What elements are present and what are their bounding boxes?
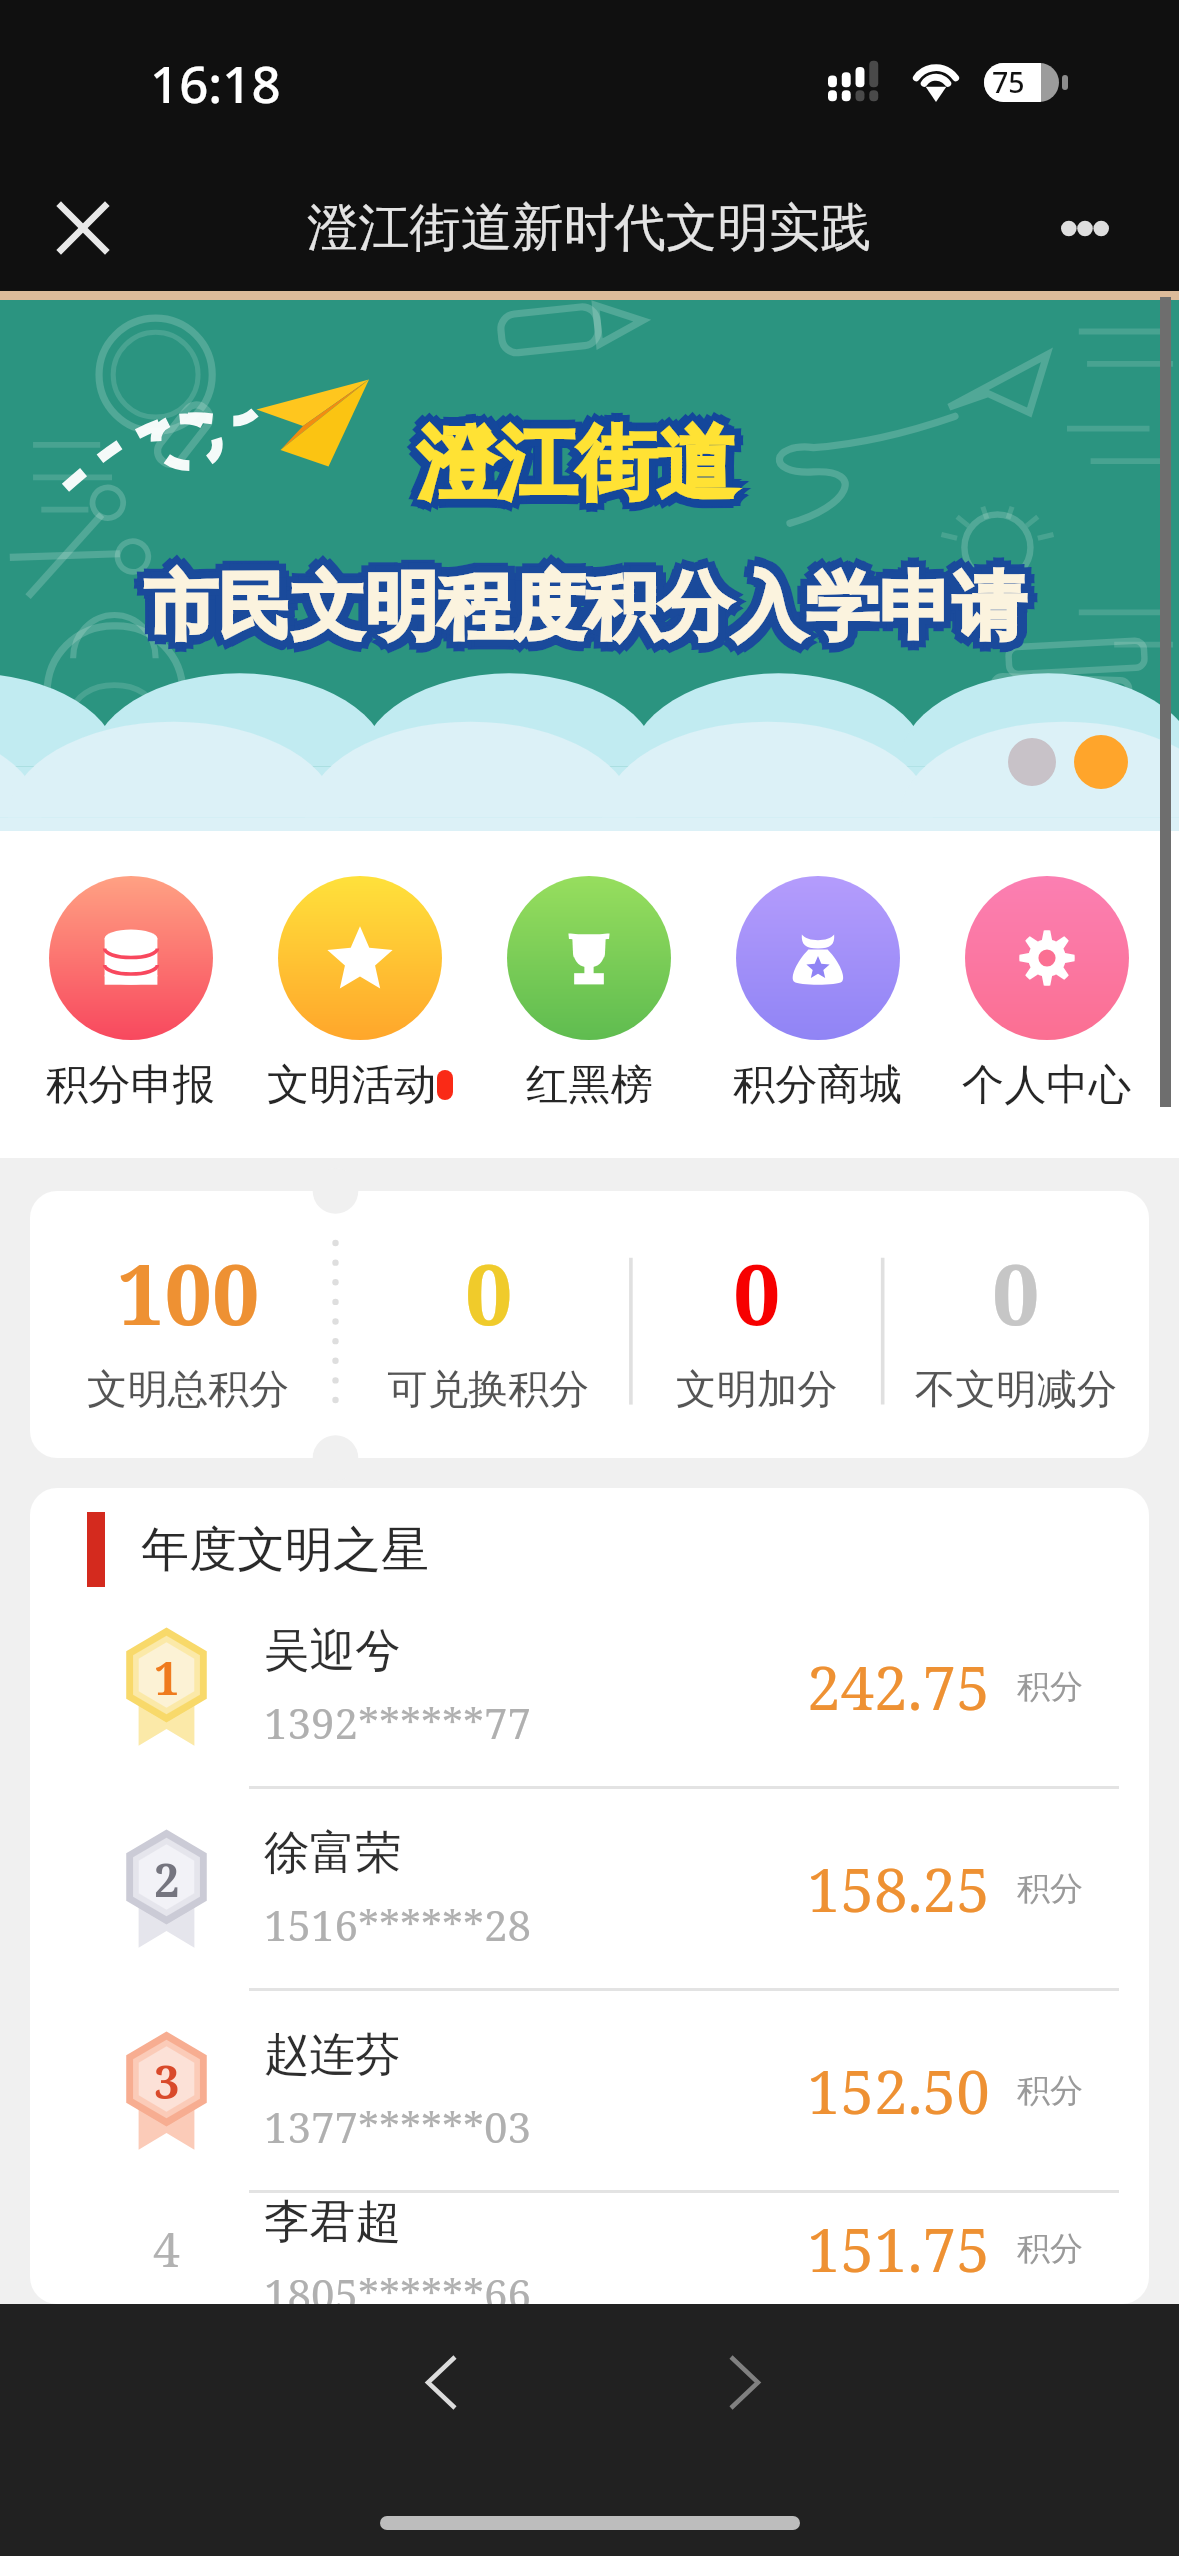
staticText: 澄江街道 xyxy=(417,423,737,524)
staticText: 3 xyxy=(154,2051,180,2112)
staticText: 市民文明程度积分入学申请 xyxy=(144,555,1026,648)
staticText: 年度文明之星 xyxy=(141,1520,429,1580)
staticText: 市民文明程度积分入学申请 xyxy=(137,568,1019,661)
button[interactable]: Forward xyxy=(684,2322,804,2442)
staticText: 吴迎兮 xyxy=(264,1622,401,1679)
staticText: 市民文明程度积分入学申请 xyxy=(150,561,1032,654)
staticText: 积分申报 xyxy=(46,1058,216,1111)
button[interactable]: 4 xyxy=(30,2193,1149,2304)
staticText: 不文明减分 xyxy=(915,1364,1118,1415)
staticText: 1516******28 xyxy=(264,1896,531,1953)
staticText: 积分 xyxy=(1017,2070,1083,2112)
staticText: 澄江街道 xyxy=(408,414,728,515)
button[interactable]: 2 xyxy=(30,1789,1149,1991)
staticText: 积分 xyxy=(1017,1666,1083,1708)
button[interactable]: 0 xyxy=(346,1191,631,1458)
staticText: 徐富荣 xyxy=(264,1824,401,1881)
staticText: 市民文明程度积分入学申请 xyxy=(134,561,1016,654)
staticText: 市民文明程度积分入学申请 xyxy=(144,551,1026,644)
staticText: 澄江街道 xyxy=(411,414,731,515)
button[interactable]: 1 xyxy=(30,1587,1149,1789)
button[interactable]: 0 xyxy=(883,1191,1149,1458)
staticText: 赵连芬 xyxy=(264,2026,401,2083)
staticText: 市民文明程度积分入学申请 xyxy=(138,567,1020,660)
staticText: 75 xyxy=(992,63,1025,102)
staticText: 市民文明程度积分入学申请 xyxy=(150,555,1032,648)
staticText: 个人中心 xyxy=(962,1058,1132,1111)
staticText: 澄江街道 xyxy=(410,407,730,508)
staticText: 澄江街道 xyxy=(417,408,737,509)
button[interactable]: 积分商城 xyxy=(725,876,911,1111)
staticText: 澄江街道 xyxy=(423,414,743,515)
staticText: 0 xyxy=(992,1235,1040,1349)
staticText: 市民文明程度积分入学申请 xyxy=(151,568,1033,661)
staticText: 0 xyxy=(733,1235,781,1349)
staticText: 文明加分 xyxy=(676,1364,838,1415)
staticText: 市民文明程度积分入学申请 xyxy=(144,567,1026,660)
staticText: 澄江街道 xyxy=(423,408,743,509)
staticText: 澄江街道 xyxy=(426,414,746,515)
staticText: 市民文明程度积分入学申请 xyxy=(144,571,1026,664)
staticText: 1 xyxy=(154,1647,180,1708)
staticText: 澄江街道 xyxy=(423,420,743,521)
staticText: 红黑榜 xyxy=(526,1058,653,1111)
staticText: 4 xyxy=(153,2216,180,2281)
staticText: 市民文明程度积分入学申请 xyxy=(138,555,1020,648)
button[interactable]: 澄江街道 xyxy=(0,291,1179,831)
staticText: 0 xyxy=(465,1235,513,1349)
staticText: 1377******03 xyxy=(264,2098,531,2155)
staticText: 152.50 xyxy=(807,2050,990,2132)
staticText: 澄江街道 xyxy=(410,421,730,522)
staticText: 澄江街道 xyxy=(417,420,737,521)
staticText: 澄江街道 xyxy=(417,414,737,515)
staticText: 积分 xyxy=(1017,2228,1083,2270)
staticText: 158.25 xyxy=(807,1848,990,1930)
button[interactable]: Back xyxy=(381,2322,501,2442)
button[interactable]: Close xyxy=(12,165,153,291)
button[interactable]: 红黑榜 xyxy=(496,876,682,1111)
button[interactable]: 文明活动 xyxy=(267,876,453,1111)
staticText: 市民文明程度积分入学申请 xyxy=(150,567,1032,660)
staticText: 李君超 xyxy=(264,2193,401,2250)
staticText: 16:18 xyxy=(150,48,281,117)
staticText: 242.75 xyxy=(807,1646,990,1728)
button[interactable]: 3 xyxy=(30,1991,1149,2193)
staticText: 2 xyxy=(154,1849,180,1910)
staticText: 1805******66 xyxy=(264,2265,531,2304)
staticText: 积分 xyxy=(1017,1868,1083,1910)
button[interactable]: 个人中心 xyxy=(954,876,1140,1111)
staticText: 市民文明程度积分入学申请 xyxy=(144,561,1026,654)
staticText: 文明总积分 xyxy=(87,1364,290,1415)
staticText: 可兑换积分 xyxy=(387,1364,590,1415)
button[interactable]: 积分申报 xyxy=(38,876,224,1111)
staticText: 澄江街道 xyxy=(417,405,737,506)
staticText: 澄江街道 xyxy=(424,421,744,522)
staticText: 151.75 xyxy=(807,2208,990,2290)
staticText: 澄江街道 xyxy=(424,407,744,508)
staticText: 文明活动 xyxy=(267,1058,437,1111)
staticText: 1392******77 xyxy=(264,1694,531,1751)
staticText: 澄江街道 xyxy=(411,408,731,509)
staticText: 100 xyxy=(117,1235,260,1349)
staticText: 澄江街道 xyxy=(411,420,731,521)
button[interactable]: More options xyxy=(1014,165,1155,291)
staticText: 市民文明程度积分入学申请 xyxy=(154,561,1036,654)
staticText: 积分商城 xyxy=(733,1058,903,1111)
button[interactable]: 0 xyxy=(631,1191,883,1458)
staticText: 市民文明程度积分入学申请 xyxy=(137,554,1019,647)
button[interactable]: 100 xyxy=(30,1191,346,1458)
staticText: 市民文明程度积分入学申请 xyxy=(138,561,1020,654)
staticText: 市民文明程度积分入学申请 xyxy=(151,554,1033,647)
staticText: 澄江街道新时代文明实践 xyxy=(307,196,872,261)
